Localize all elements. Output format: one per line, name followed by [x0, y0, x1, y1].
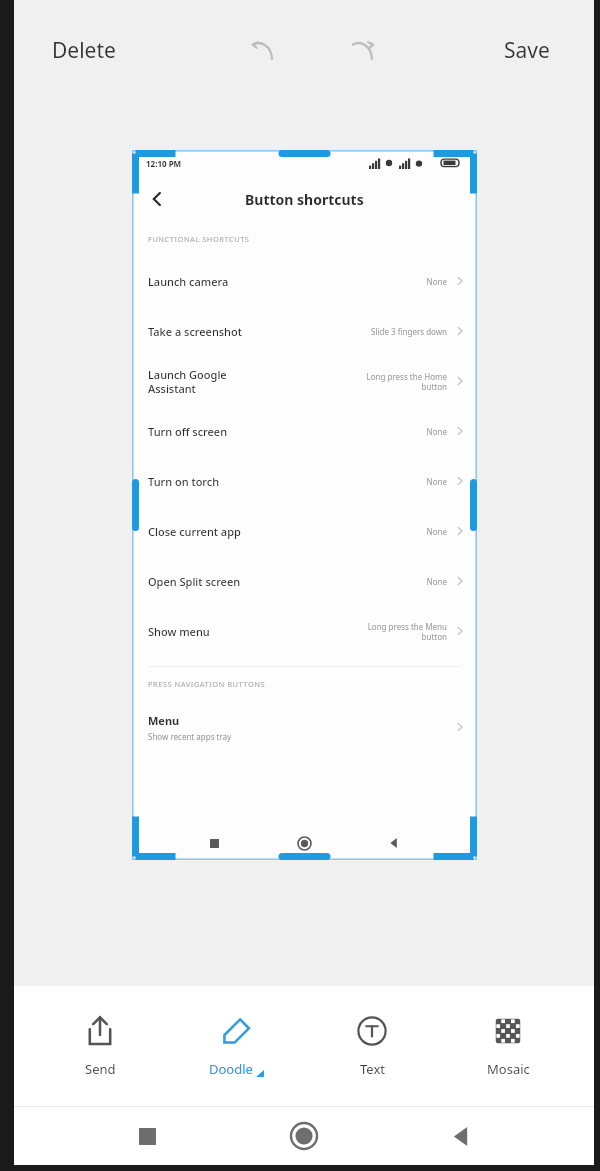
button[interactable]: Home [280, 1112, 328, 1160]
button[interactable]: Recents [123, 1112, 171, 1160]
button[interactable]: Text [322, 1006, 422, 1086]
button[interactable]: Take a screenshot [132, 306, 477, 356]
button[interactable]: Send [50, 1006, 150, 1086]
staticText: Long press the Menu button [367, 621, 447, 642]
button[interactable]: Turn on torch [132, 456, 477, 506]
staticText: Mosaic [487, 1060, 530, 1078]
button[interactable]: Redo [341, 28, 385, 72]
staticText: Doodle [209, 1060, 253, 1078]
staticText: Close current app [148, 524, 426, 539]
button[interactable]: Doodle [186, 1006, 286, 1086]
button[interactable]: Turn off screen [132, 406, 477, 456]
button[interactable]: Back [437, 1112, 485, 1160]
staticText: Open Split screen [148, 574, 426, 589]
button[interactable]: Launch camera [132, 256, 477, 306]
staticText: Button shortcuts [245, 190, 364, 209]
button[interactable]: Undo [241, 28, 285, 72]
staticText: Menu [148, 713, 180, 728]
staticText: Take a screenshot [148, 324, 371, 339]
staticText: None [426, 426, 447, 437]
button[interactable]: Back [140, 182, 174, 216]
staticText: 12:10 PM [146, 158, 182, 169]
button[interactable]: Menu [132, 701, 477, 753]
staticText: Show recent apps tray [148, 731, 232, 742]
staticText: None [426, 576, 447, 587]
staticText: Save [504, 36, 550, 65]
staticText: Slide 3 fingers down [371, 326, 447, 337]
button[interactable]: Save [500, 30, 554, 71]
staticText: Text [360, 1060, 385, 1078]
staticText: Show menu [148, 624, 367, 639]
staticText: Turn on torch [148, 474, 426, 489]
staticText: None [426, 276, 447, 287]
button[interactable]: Launch Google Assistant [132, 356, 477, 406]
staticText: None [426, 526, 447, 537]
button[interactable]: Show menu [132, 606, 477, 656]
staticText: Launch camera [148, 274, 426, 289]
staticText: Send [85, 1060, 116, 1078]
button[interactable]: Open Split screen [132, 556, 477, 606]
staticText: Launch Google Assistant [148, 367, 366, 396]
staticText: Delete [52, 36, 116, 65]
staticText: FUNCTIONAL SHORTCUTS [148, 234, 250, 244]
button[interactable]: Close current app [132, 506, 477, 556]
staticText: Turn off screen [148, 424, 426, 439]
staticText: None [426, 476, 447, 487]
button[interactable]: Mosaic [458, 1006, 558, 1086]
button[interactable]: Delete [48, 30, 120, 71]
staticText: PRESS NAVIGATION BUTTONS [148, 679, 266, 689]
staticText: Long press the Home button [366, 371, 447, 392]
